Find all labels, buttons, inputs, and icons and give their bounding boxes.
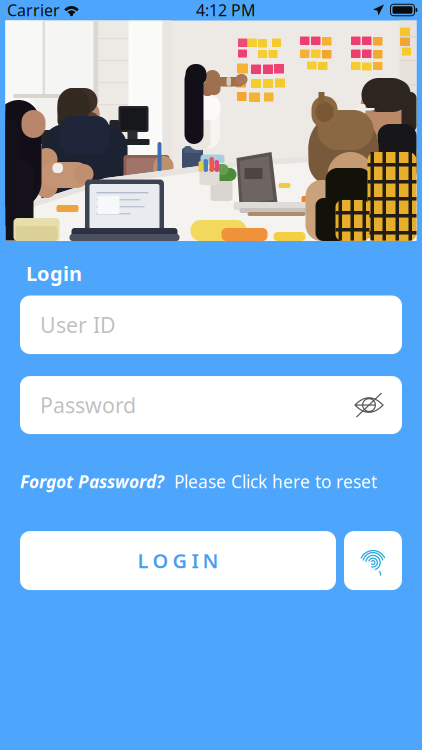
button[interactable]: Forgot Password?	[20, 470, 377, 493]
staticText: Password	[40, 391, 136, 419]
button[interactable]: Sign in with Touch ID	[344, 531, 402, 590]
staticText: Carrier	[7, 0, 60, 21]
staticText: User ID	[40, 311, 116, 339]
button[interactable]: LOGIN	[20, 531, 336, 590]
staticText: LOGIN	[137, 547, 218, 574]
staticText: Login	[26, 260, 82, 287]
staticText: 4:12 PM	[196, 0, 256, 21]
staticText: Forgot Password?	[20, 470, 164, 493]
staticText: Please Click here to reset	[164, 470, 377, 493]
